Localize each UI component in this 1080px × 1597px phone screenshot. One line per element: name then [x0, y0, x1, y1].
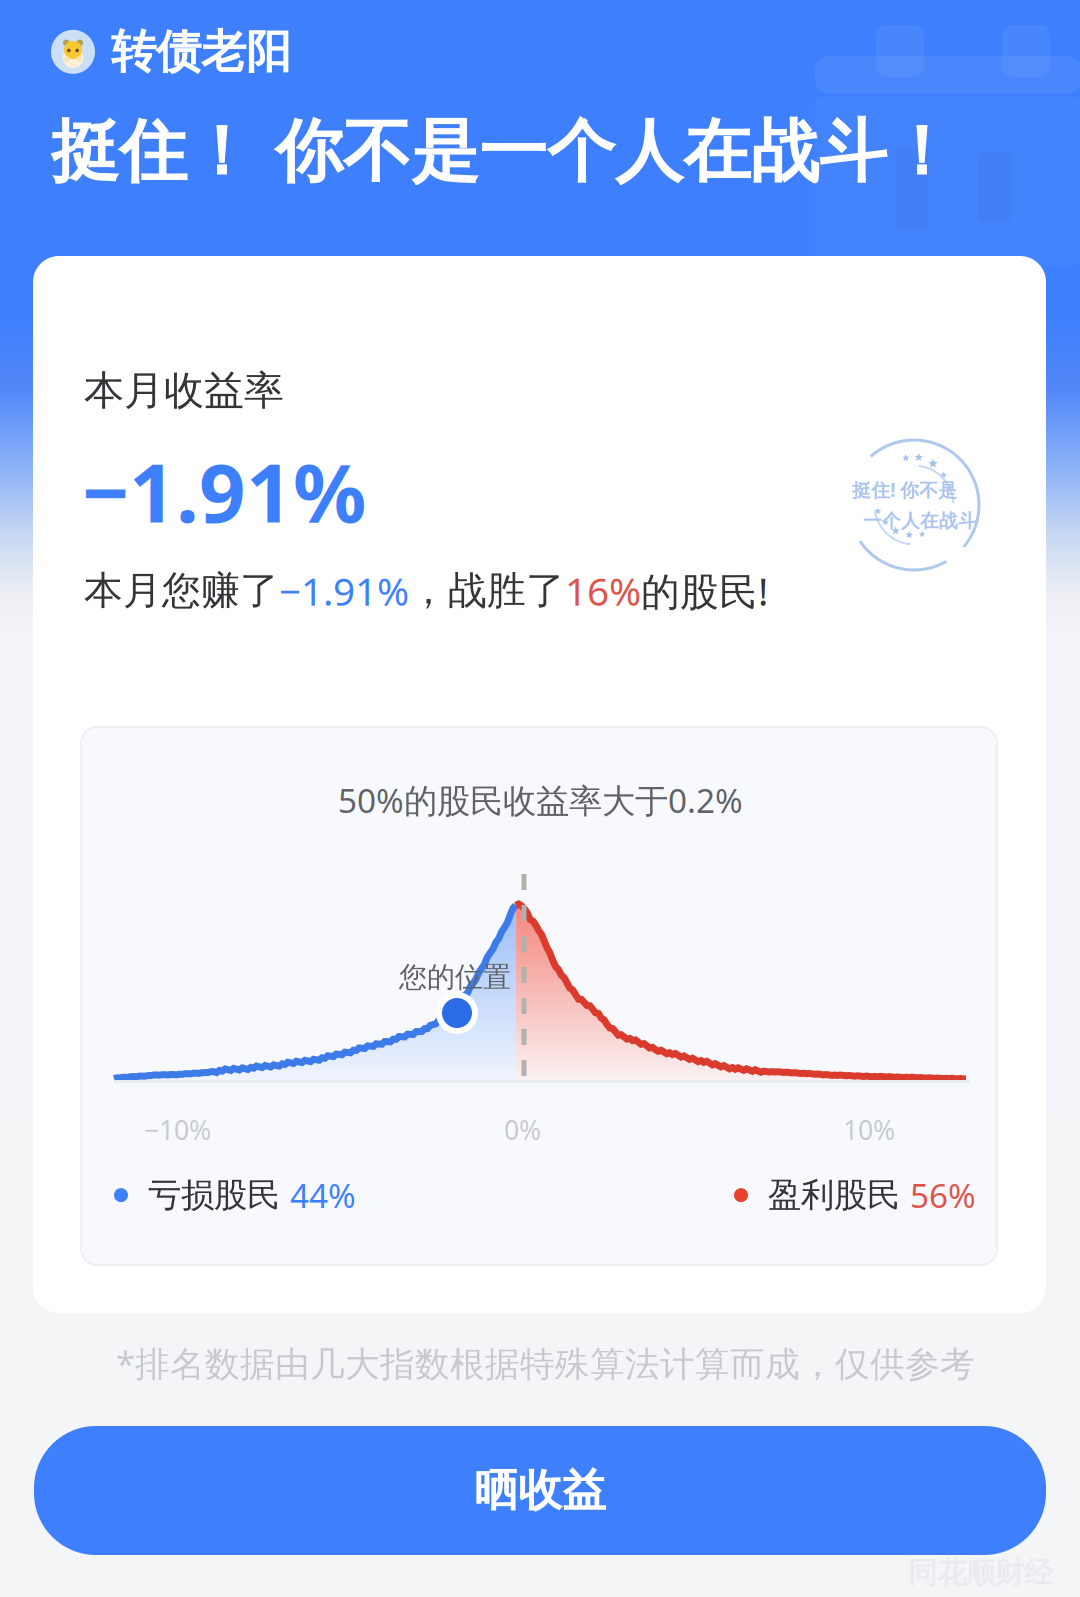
staticText: 50%的股民收益率大于0.2%	[338, 778, 743, 822]
staticText: 盈利股民	[748, 1175, 910, 1216]
staticText: 晒收益	[474, 1463, 606, 1517]
staticText: 您的位置	[399, 960, 511, 994]
staticText: 的股民!	[641, 565, 768, 616]
staticText: 转债老阳	[111, 24, 291, 80]
staticText: 44%	[290, 1173, 356, 1217]
staticText: 56%	[910, 1173, 976, 1217]
staticText: 同花顺财经	[908, 1555, 1053, 1591]
staticText: 16%	[565, 565, 641, 616]
staticText: ，战胜了	[409, 567, 565, 614]
staticText: 挺住! 你不是	[852, 477, 957, 502]
staticText: *排名数据由几大指数根据特殊算法计算而成，仅供参考	[116, 1340, 975, 1386]
staticText: 本月您赚了	[84, 567, 279, 614]
staticText: 0%	[504, 1112, 541, 1147]
staticText: 10%	[843, 1112, 895, 1147]
staticText: 亏损股民	[128, 1175, 290, 1216]
staticText: −1.91%	[82, 437, 366, 545]
staticText: 一个人在战斗	[863, 510, 977, 533]
staticText: −1.91%	[279, 565, 409, 616]
button[interactable]: 晒收益	[34, 1426, 1046, 1555]
staticText: −10%	[144, 1112, 211, 1147]
staticText: 本月收益率	[84, 366, 284, 415]
staticText: 挺住！ 你不是一个人在战斗！	[51, 110, 955, 193]
button[interactable]: 转债老阳	[51, 24, 291, 80]
